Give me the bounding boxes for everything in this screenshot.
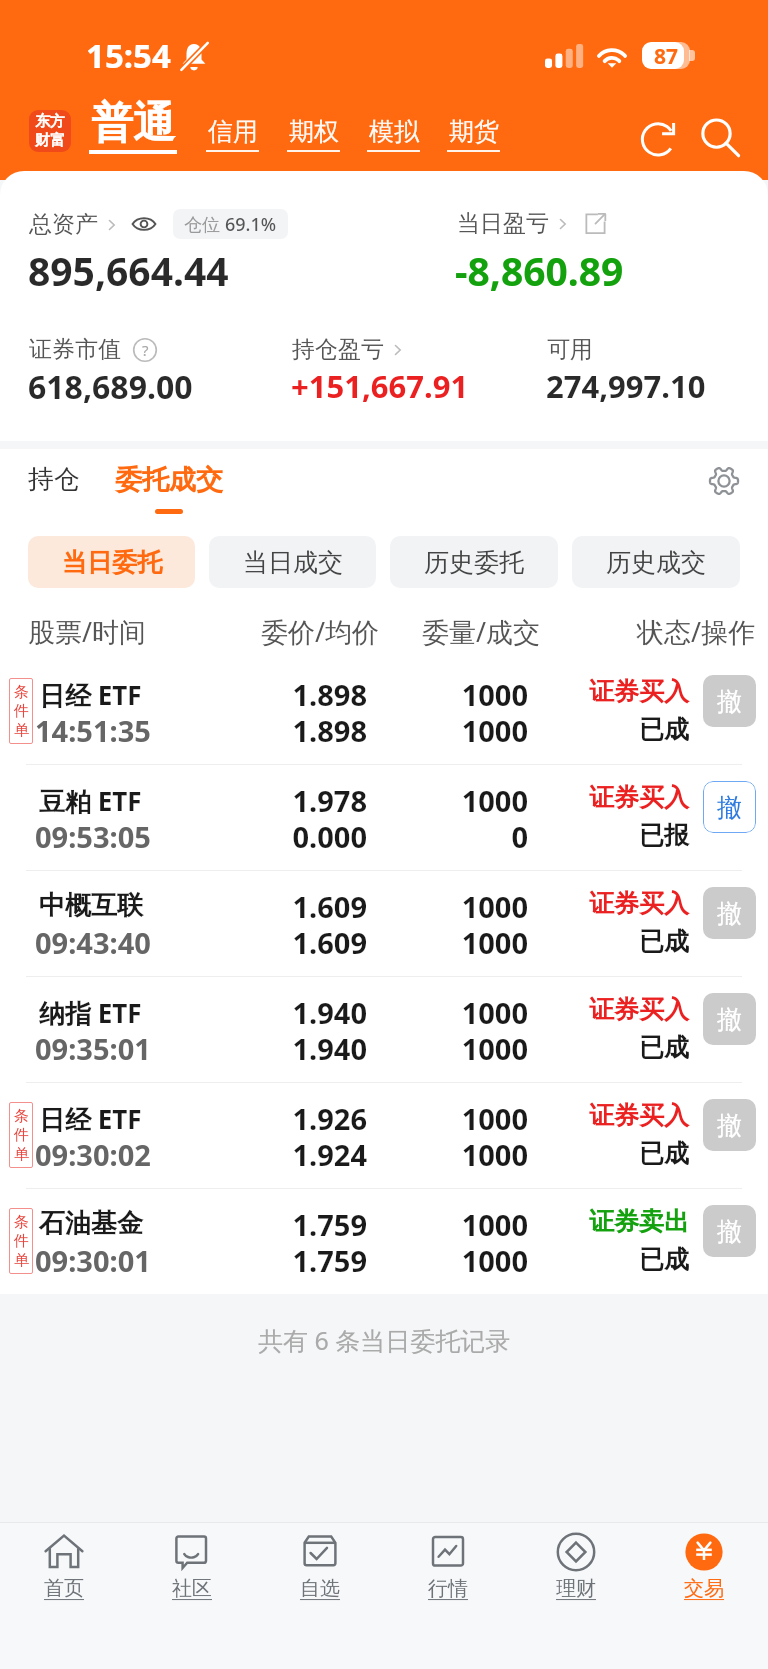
staticText: 普通 [91, 97, 175, 150]
button[interactable]: Settings [704, 461, 744, 501]
staticText: 已成 [539, 1138, 689, 1169]
staticText: -8,860.89 [455, 244, 624, 297]
staticText: 撤 [717, 1216, 742, 1247]
staticText: 895,664.44 [28, 244, 229, 297]
button[interactable]: 历史成交 [572, 536, 740, 588]
staticText: 可用 [547, 335, 593, 364]
button[interactable]: 首页 [0, 1532, 128, 1618]
button[interactable]: 自选 [256, 1532, 384, 1618]
staticText: 历史成交 [606, 547, 706, 578]
button[interactable]: 持仓 [28, 463, 80, 496]
staticText: 期货 [449, 116, 499, 147]
button[interactable]: 交易 [640, 1532, 768, 1618]
button[interactable]: 纳指 ETF [0, 977, 768, 1082]
staticText: 09:53:05 [35, 817, 151, 856]
staticText: 87 [654, 42, 679, 69]
staticText: 行情 [428, 1576, 468, 1601]
staticText: 09:30:01 [35, 1241, 151, 1280]
staticText: 15:54 [86, 33, 171, 78]
button[interactable]: 撤 [703, 675, 756, 727]
button[interactable]: 撤 [703, 1099, 756, 1151]
staticText: 当日委托 [62, 547, 162, 578]
button[interactable]: Open detail [582, 211, 608, 237]
button[interactable]: 理财 [512, 1532, 640, 1618]
button[interactable]: Help [133, 338, 157, 362]
staticText: 信用 [208, 116, 258, 147]
button[interactable]: 撤 [703, 781, 756, 833]
staticText: 状态/操作 [560, 613, 755, 650]
button[interactable]: 当日委托 [28, 536, 195, 588]
staticText: 单 [14, 1145, 29, 1164]
staticText: 已报 [539, 820, 689, 851]
button[interactable]: 期货 [447, 116, 500, 152]
button[interactable]: 社区 [128, 1532, 256, 1618]
button[interactable]: 豆粕 ETF [0, 765, 768, 870]
button[interactable]: 条 [0, 659, 768, 764]
staticText: 持仓盈亏 [292, 335, 384, 364]
button[interactable]: 委托成交 [115, 463, 223, 514]
staticText: 已成 [539, 1032, 689, 1063]
button[interactable]: 条 [0, 1189, 768, 1294]
staticText: 自选 [300, 1576, 340, 1601]
button[interactable]: 撤 [703, 1205, 756, 1257]
staticText: 1000 [378, 1029, 528, 1068]
button[interactable]: 总资产 [29, 210, 121, 239]
button[interactable]: 模拟 [367, 116, 420, 152]
staticText: 首页 [44, 1576, 84, 1601]
staticText: 委量/成交 [390, 613, 540, 650]
staticText: 1000 [378, 675, 528, 714]
button[interactable]: 持仓盈亏 [292, 335, 407, 364]
staticText: 1.898 [167, 675, 367, 714]
button[interactable]: Search [694, 112, 746, 164]
staticText: 证券买入 [539, 1100, 689, 1131]
staticText: 1000 [378, 1205, 528, 1244]
button[interactable]: 仓位 [173, 209, 288, 239]
staticText: 1000 [378, 781, 528, 820]
staticText: 1000 [378, 1241, 528, 1280]
button[interactable]: 信用 [206, 116, 259, 152]
button[interactable]: 撤 [703, 993, 756, 1045]
staticText: 撤 [717, 898, 742, 929]
staticText: 09:43:40 [35, 923, 151, 962]
button[interactable]: 普通 [89, 97, 177, 154]
staticText: 纳指 ETF [39, 995, 142, 1031]
button[interactable]: 历史委托 [390, 536, 558, 588]
staticText: 当日盈亏 [457, 209, 549, 238]
staticText: 理财 [556, 1576, 596, 1601]
button[interactable]: Hide balance [131, 211, 157, 237]
staticText: 14:51:35 [35, 711, 151, 750]
staticText: 274,997.10 [546, 365, 706, 407]
staticText: 1000 [378, 1135, 528, 1174]
staticText: 股票/时间 [28, 613, 147, 650]
staticText: 历史委托 [424, 547, 524, 578]
staticText: 件 [14, 1232, 29, 1251]
staticText: 已成 [539, 714, 689, 745]
staticText: 1000 [378, 993, 528, 1032]
staticText: 1.759 [167, 1241, 367, 1280]
button[interactable]: 行情 [384, 1532, 512, 1618]
staticText: 当日成交 [243, 547, 343, 578]
staticText: 0.000 [167, 817, 367, 856]
staticText: 1.759 [167, 1205, 367, 1244]
button[interactable]: Refresh [632, 112, 684, 164]
button[interactable]: 当日盈亏 [457, 209, 572, 238]
button[interactable]: 中概互联 [0, 871, 768, 976]
staticText: 证券市值 [29, 335, 121, 364]
staticText: 09:30:02 [35, 1135, 151, 1174]
staticText: 条 [14, 1107, 29, 1126]
button[interactable]: 条 [0, 1083, 768, 1188]
staticText: 已成 [539, 1244, 689, 1275]
staticText: 日经 ETF [39, 1101, 142, 1137]
button[interactable]: East Money [29, 110, 71, 152]
staticText: 1000 [378, 1099, 528, 1138]
staticText: 撤 [717, 686, 742, 717]
staticText: 委价/均价 [150, 613, 379, 650]
button[interactable]: 当日成交 [209, 536, 376, 588]
staticText: 1000 [378, 887, 528, 926]
staticText: 证券买入 [539, 888, 689, 919]
button[interactable]: 撤 [703, 887, 756, 939]
staticText: 09:35:01 [35, 1029, 151, 1068]
button[interactable]: 期权 [287, 116, 340, 152]
staticText: 1.898 [167, 711, 367, 750]
staticText: 证券买入 [539, 994, 689, 1025]
